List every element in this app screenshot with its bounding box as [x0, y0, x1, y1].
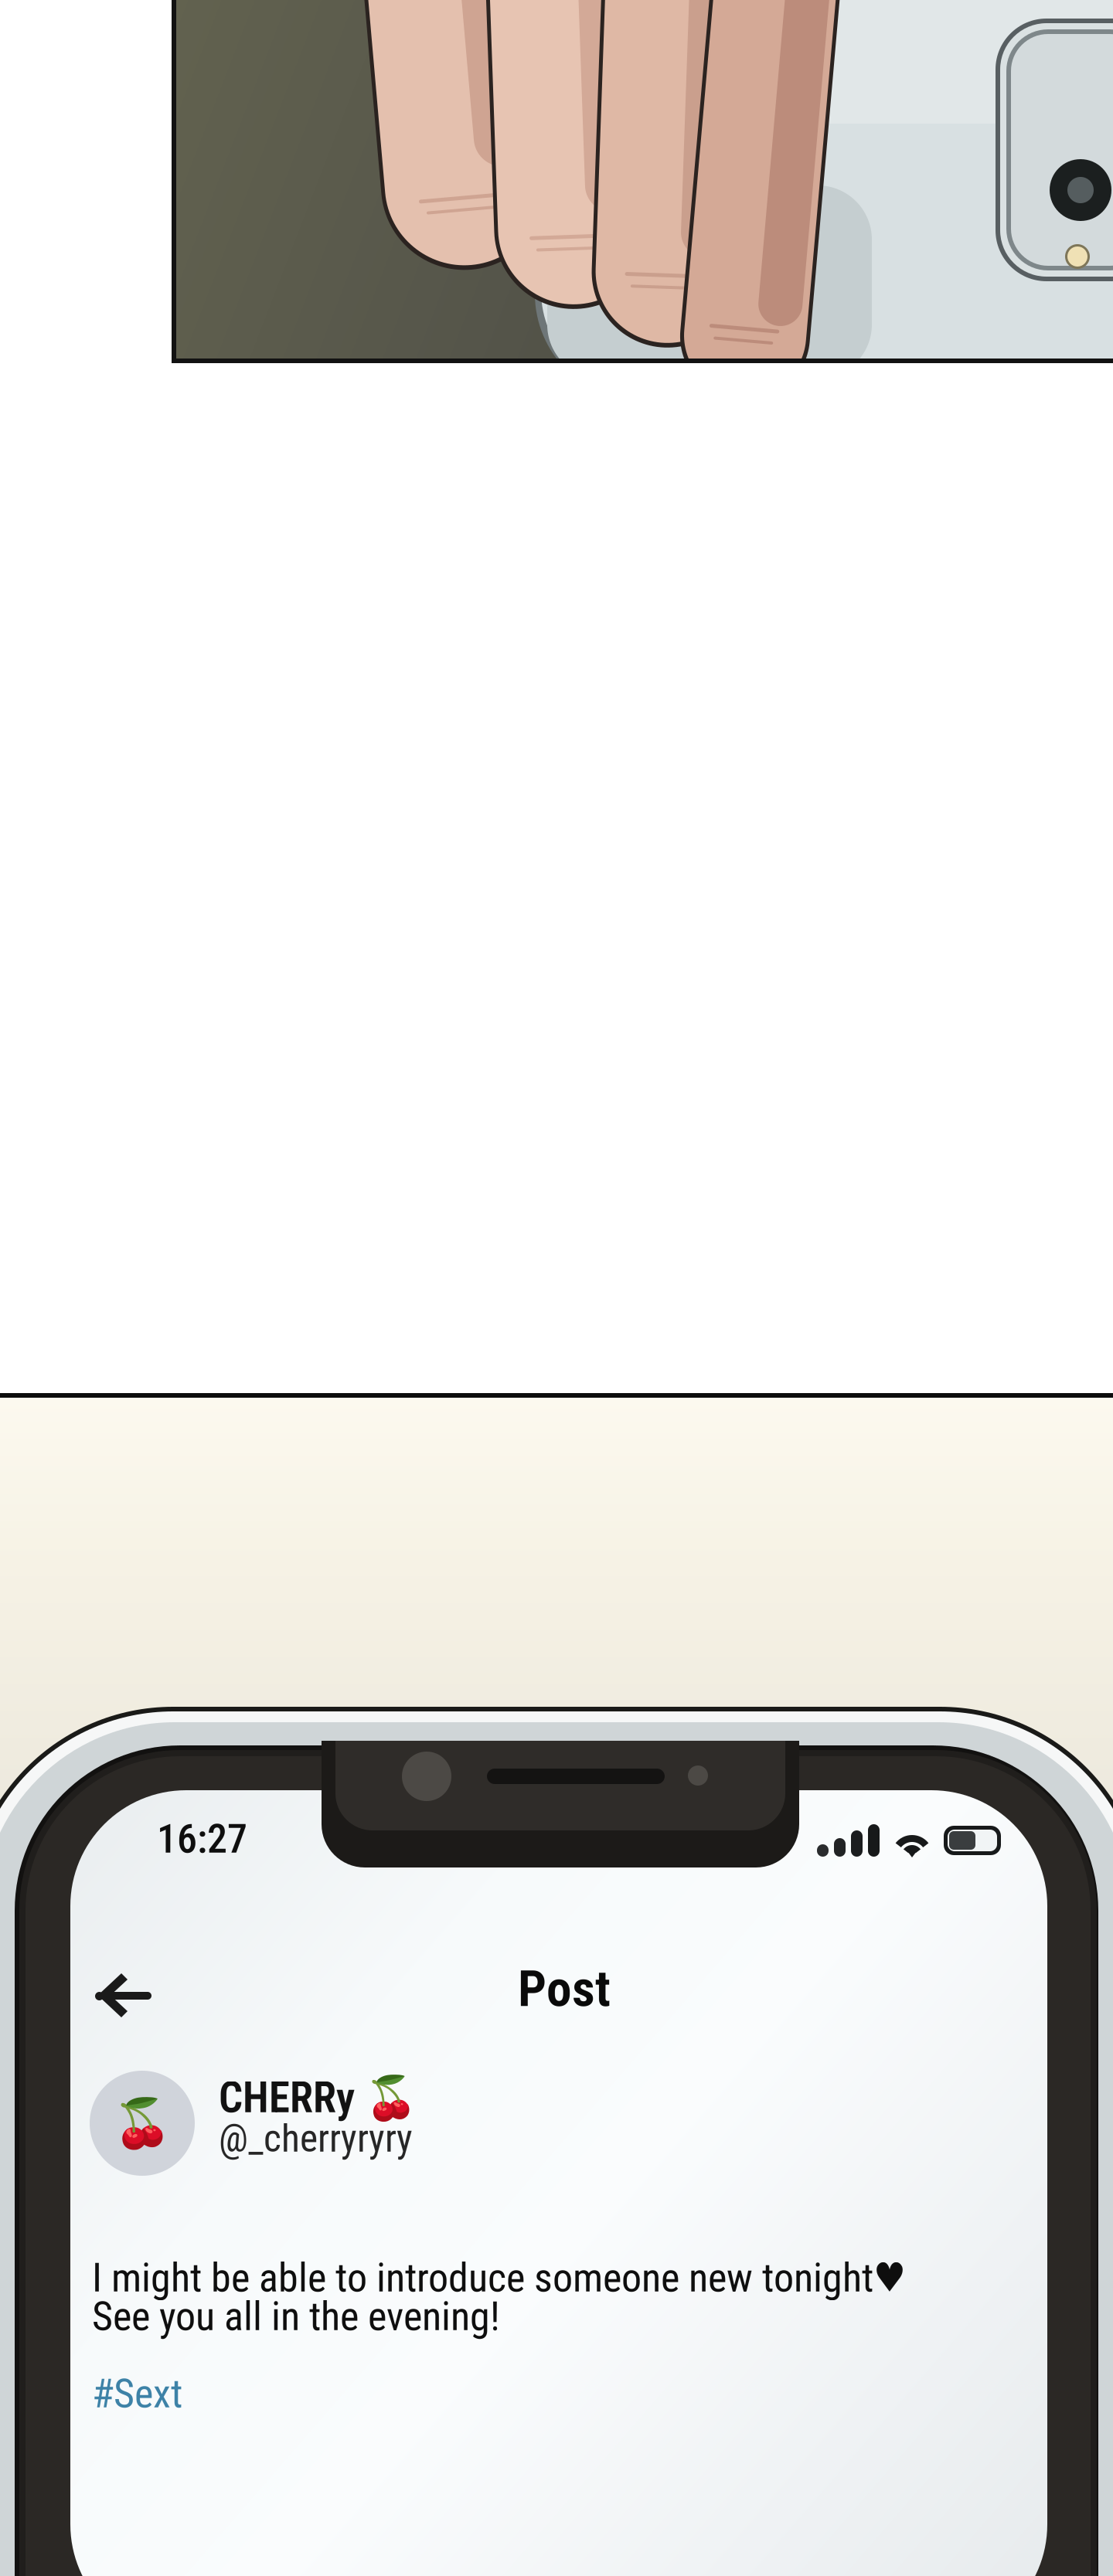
- button[interactable]: #Sext: [92, 2370, 262, 2418]
- staticText: #Sext: [92, 2370, 182, 2417]
- staticText: CHERRy 🍒: [219, 2073, 417, 2123]
- staticText: @_cherryryry: [219, 2116, 413, 2161]
- staticText: See you all in the evening!: [92, 2293, 500, 2340]
- staticText: Post: [518, 1959, 611, 2018]
- button[interactable]: 🍒: [90, 2071, 1002, 2180]
- staticText: 🍒: [113, 2095, 172, 2151]
- button[interactable]: Back: [86, 1965, 158, 2027]
- staticText: 16:27: [157, 1815, 247, 1862]
- staticText: I might be able to introduce someone new…: [92, 2254, 906, 2301]
